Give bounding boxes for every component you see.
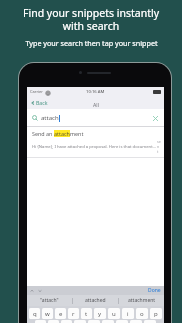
button[interactable]: h <box>102 320 114 323</box>
button[interactable]: j <box>116 320 128 323</box>
button[interactable]: s <box>48 320 59 323</box>
staticText: Back <box>36 99 48 106</box>
button[interactable]: attached <box>73 295 118 306</box>
button[interactable]: a <box>35 320 46 323</box>
button[interactable]: l <box>144 320 156 323</box>
staticText: t <box>85 310 88 318</box>
button[interactable]: Back <box>30 98 49 107</box>
button[interactable]: f <box>74 320 86 323</box>
staticText: Send an <box>32 130 54 137</box>
staticText: w <box>45 310 50 318</box>
button[interactable]: attachment <box>119 295 164 306</box>
staticText: p <box>154 310 158 318</box>
staticText: Hi {Name}, I have attached a proposal. H… <box>32 144 157 150</box>
staticText: Done <box>148 287 161 294</box>
staticText: y <box>98 310 102 318</box>
button[interactable]: e <box>55 308 66 319</box>
button[interactable]: d <box>61 320 72 323</box>
staticText: r <box>72 310 75 318</box>
button[interactable]: Clear search <box>151 114 159 122</box>
staticText: attach <box>54 130 70 137</box>
button[interactable]: Done <box>145 286 164 295</box>
button[interactable]: g <box>88 320 100 323</box>
staticText: ment <box>70 130 84 137</box>
staticText: q <box>33 310 37 318</box>
staticText: Carrier <box>30 89 44 94</box>
button[interactable]: k <box>130 320 142 323</box>
staticText: Find your snippets instantly with search <box>23 6 159 33</box>
button[interactable]: r <box>68 308 79 319</box>
staticText: 10:16 AM <box>86 89 105 95</box>
button[interactable]: w <box>42 308 53 319</box>
staticText: e <box>59 310 63 318</box>
staticText: u <box>112 310 116 318</box>
button[interactable]: Previous <box>30 289 34 293</box>
button[interactable]: "attach" <box>27 295 72 306</box>
staticText: attached <box>85 297 106 304</box>
staticText: "attach" <box>40 297 59 304</box>
button[interactable]: y <box>94 308 106 319</box>
staticText: i <box>127 310 129 318</box>
button[interactable]: p <box>150 308 162 319</box>
staticText: o <box>140 310 144 318</box>
staticText: attach <box>41 114 59 122</box>
button[interactable]: q <box>29 308 40 319</box>
button[interactable]: u <box>108 308 120 319</box>
staticText: attachment <box>128 297 156 304</box>
button[interactable]: Next <box>38 289 42 293</box>
staticText: sent <box>157 139 159 154</box>
button[interactable]: t <box>81 308 92 319</box>
button[interactable]: Send an <box>27 127 164 157</box>
button[interactable]: o <box>136 308 148 319</box>
staticText: All <box>93 101 99 108</box>
button[interactable]: attach <box>27 109 164 126</box>
staticText: Type your search then tap your snippet <box>25 38 158 48</box>
button[interactable]: i <box>122 308 134 319</box>
